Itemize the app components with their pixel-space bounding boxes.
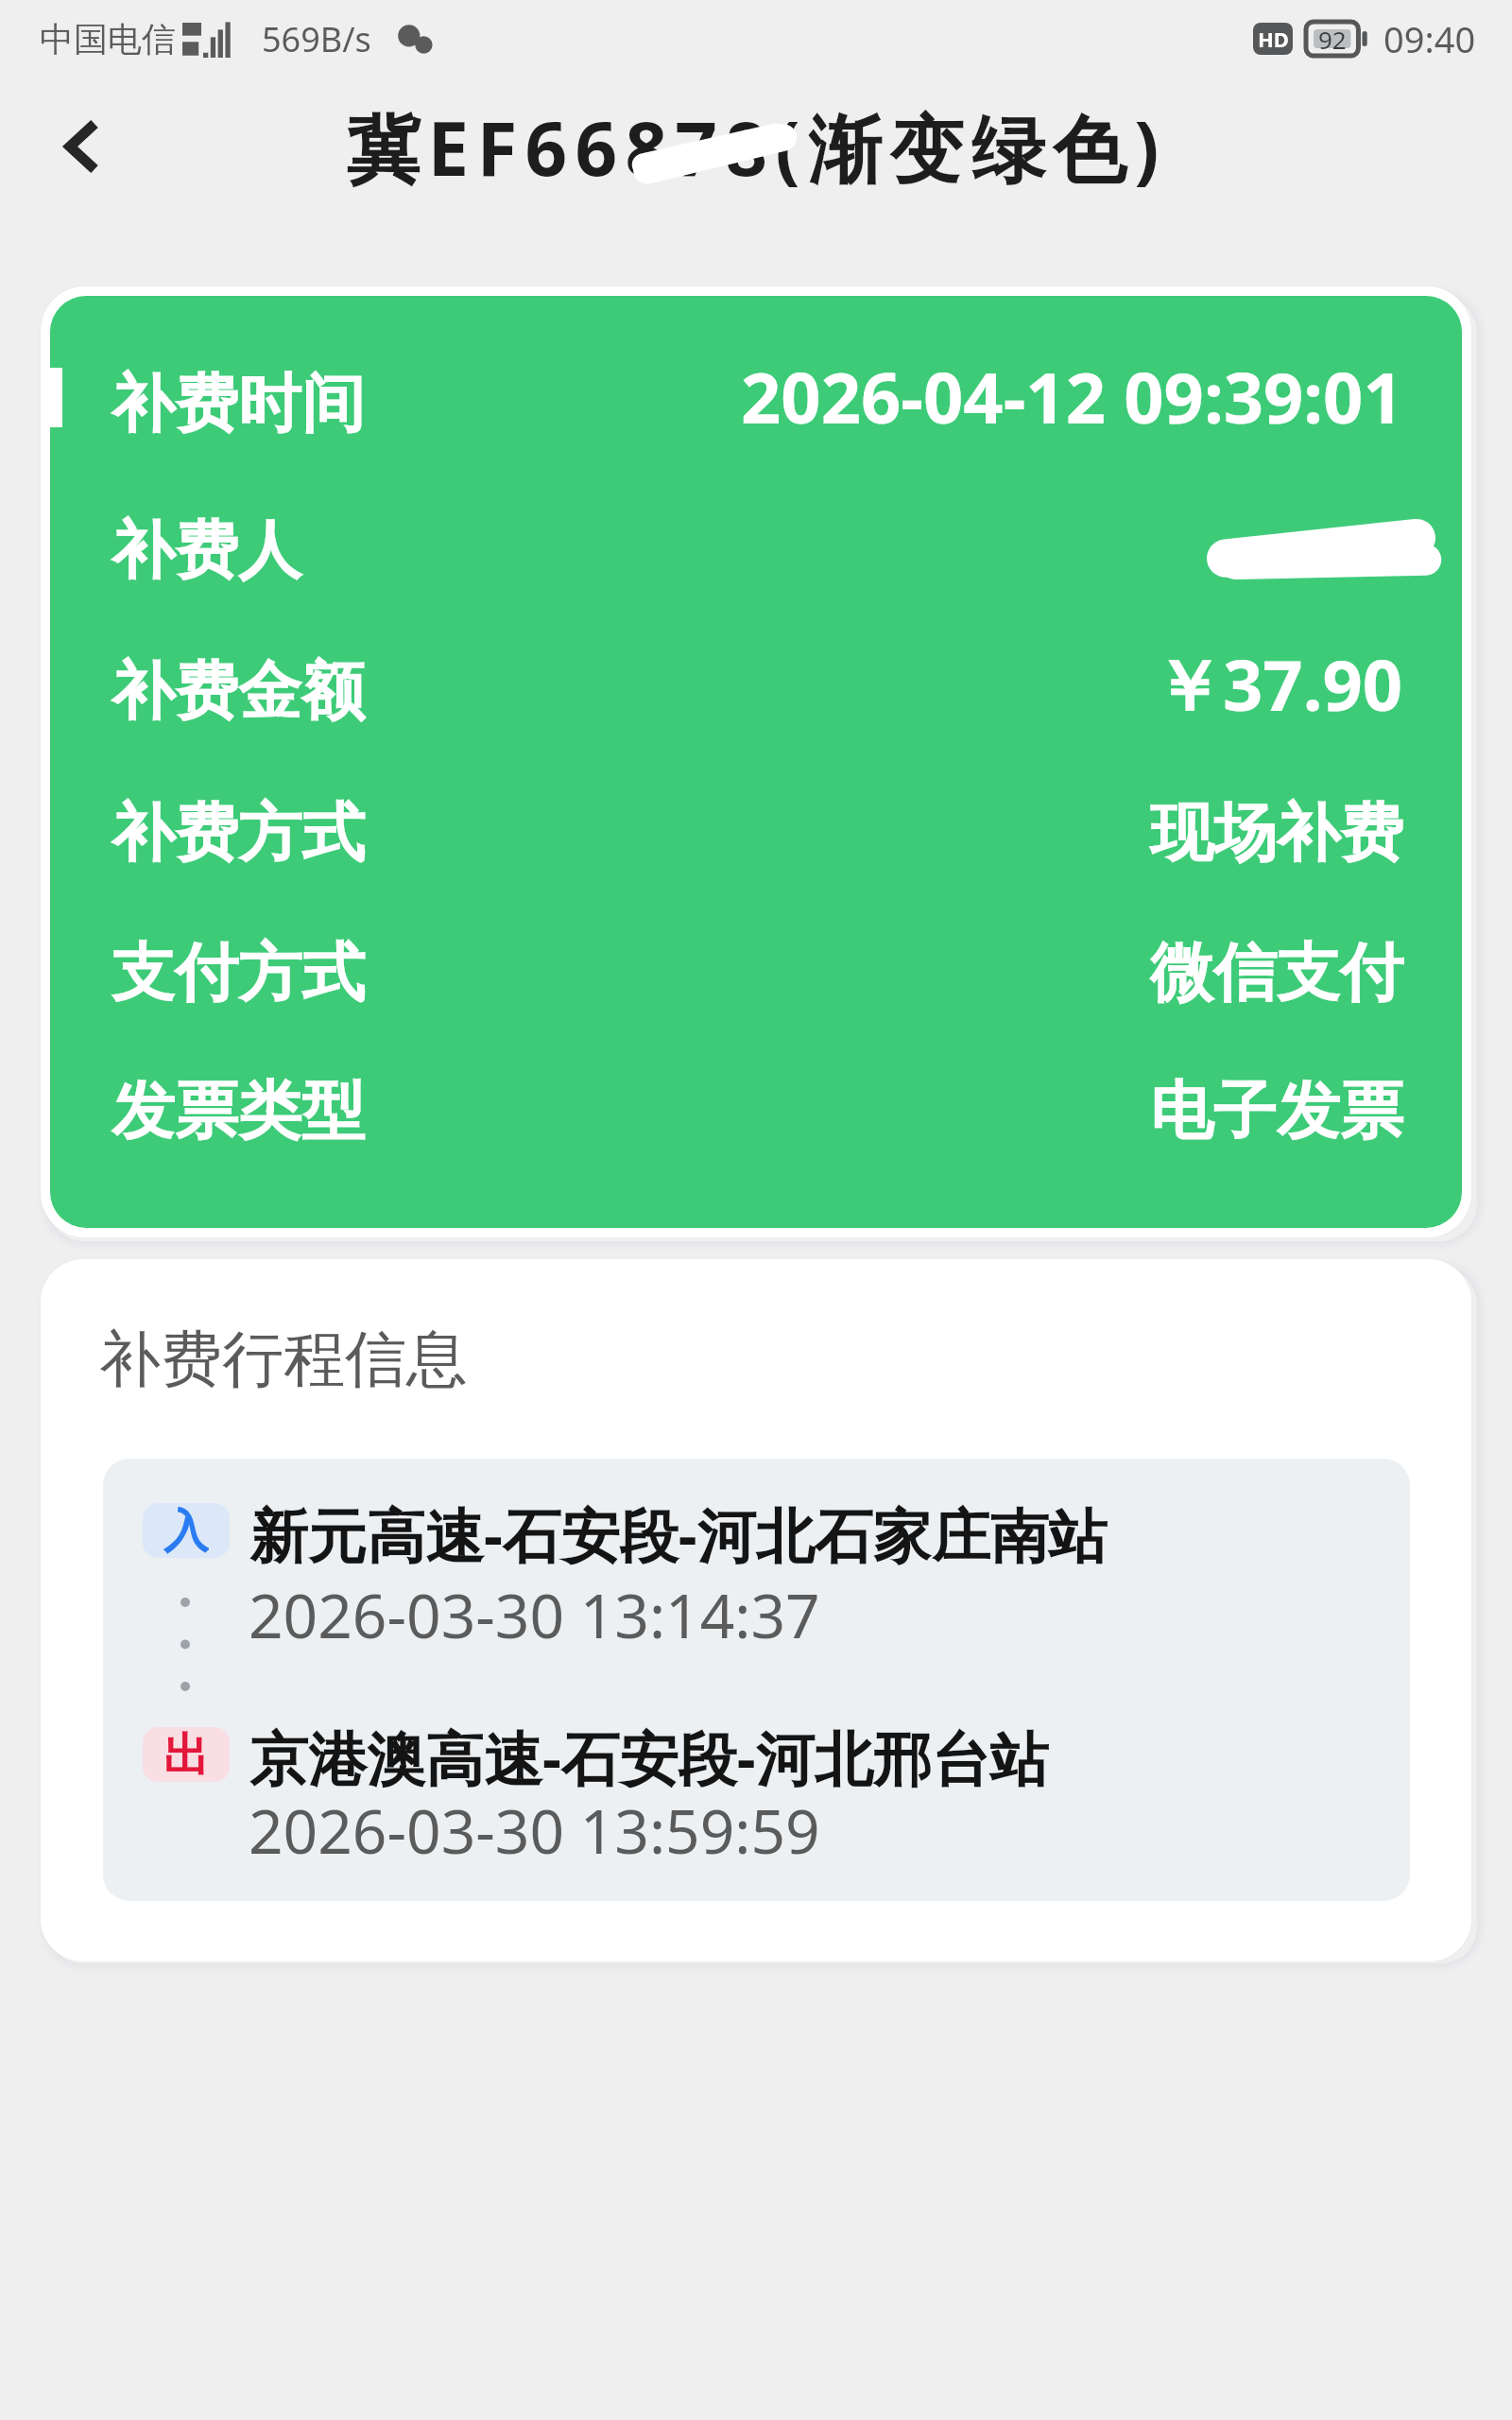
button[interactable]: 补费时间: [50, 333, 1462, 475]
button[interactable]: 补费方式: [50, 762, 1462, 904]
staticText: 补费行程信息: [99, 1321, 468, 1398]
button[interactable]: 补费人: [50, 479, 1462, 621]
staticText: 补费金额: [112, 651, 365, 731]
button[interactable]: 支付方式: [50, 902, 1462, 1044]
staticText: 补费时间: [112, 364, 365, 443]
button[interactable]: 入: [103, 1459, 1410, 1901]
staticText: 微信支付: [1150, 933, 1403, 1012]
staticText: 支付方式: [112, 933, 365, 1012]
staticText: 入: [163, 1503, 209, 1558]
button[interactable]: Back: [37, 101, 128, 192]
staticText: 补费方式: [112, 793, 365, 873]
staticText: 新元高速-石安段-河北石家庄南站: [249, 1495, 1108, 1575]
staticText: 出: [163, 1727, 209, 1782]
staticText: 发票类型: [112, 1071, 365, 1150]
staticText: 2026-03-30 13:14:37: [249, 1574, 820, 1656]
staticText: 2026-03-30 13:59:59: [249, 1789, 820, 1872]
staticText: ￥37.90: [1153, 636, 1403, 732]
staticText: 补费人: [112, 510, 301, 590]
staticText: 中国电信: [40, 18, 176, 60]
staticText: 京港澳高速-石安段-河北邢台站: [249, 1718, 1049, 1798]
staticText: 现场补费: [1150, 793, 1403, 873]
staticText: 冀EF66878(渐变绿色): [346, 97, 1167, 199]
staticText: 569B/s: [262, 16, 371, 62]
staticText: 92: [1318, 23, 1347, 56]
staticText: HD: [1258, 25, 1289, 53]
button[interactable]: 补费金额: [50, 620, 1462, 762]
button[interactable]: 发票类型: [50, 1040, 1462, 1182]
staticText: 2026-04-12 09:39:01: [741, 349, 1403, 444]
staticText: 电子发票: [1150, 1071, 1403, 1150]
staticText: 09:40: [1383, 14, 1476, 63]
